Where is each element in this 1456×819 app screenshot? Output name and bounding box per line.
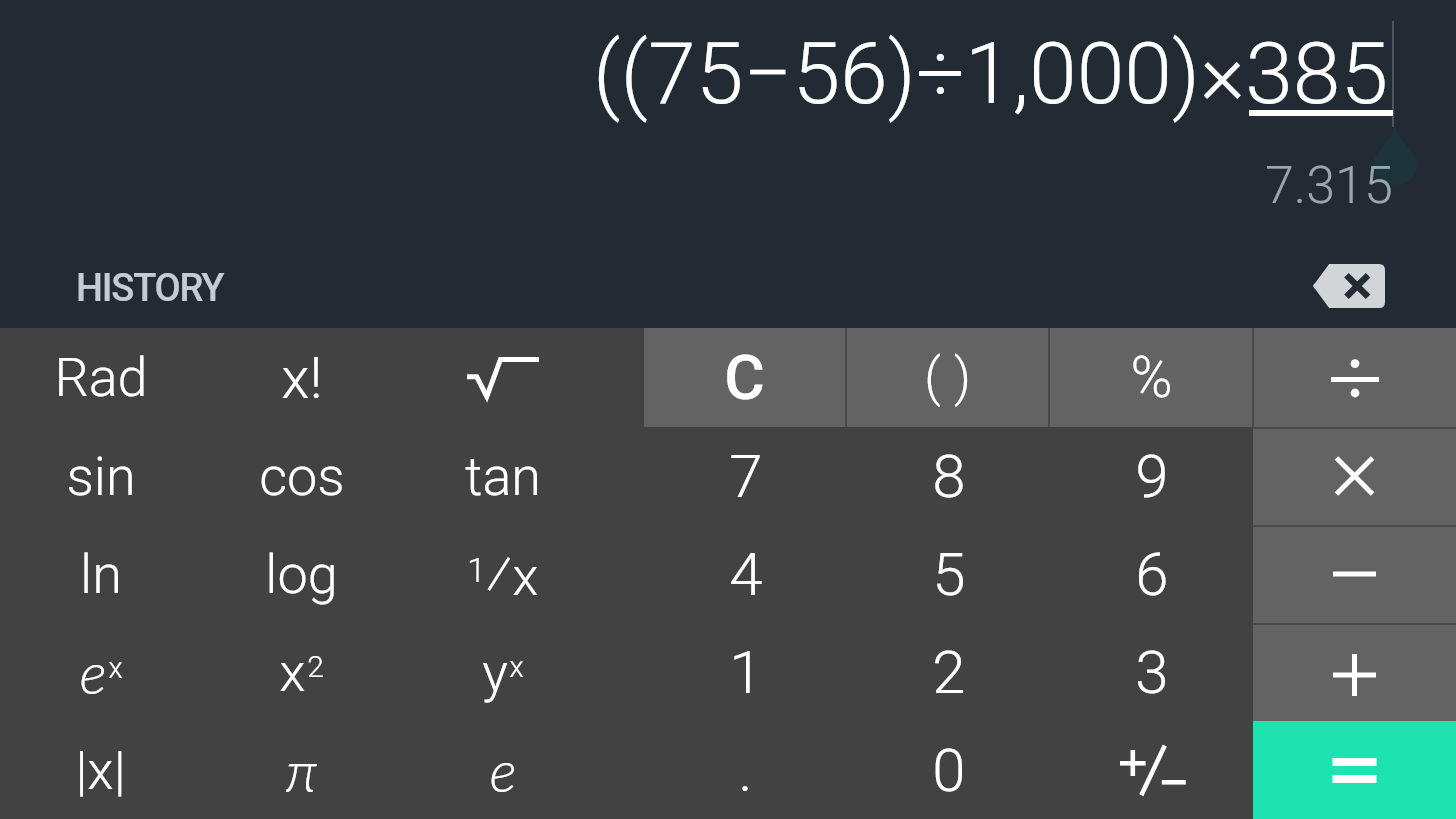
button[interactable]: 8 xyxy=(847,427,1050,525)
staticText: e xyxy=(489,735,517,805)
button[interactable]: 4 xyxy=(644,525,847,623)
button[interactable]: 5 xyxy=(847,525,1050,623)
button[interactable]: Equals xyxy=(1253,721,1456,819)
button[interactable]: Square root xyxy=(402,328,603,427)
button[interactable]: 7 xyxy=(644,427,847,525)
staticText: 4 xyxy=(729,539,763,609)
staticText: e xyxy=(79,637,107,707)
button[interactable]: cos xyxy=(201,427,402,525)
button[interactable]: x xyxy=(201,623,402,721)
other: Square root xyxy=(467,357,539,399)
staticText: 1 xyxy=(467,550,486,590)
button[interactable]: Subtract xyxy=(1253,525,1456,623)
staticText: 1 xyxy=(729,637,763,707)
button[interactable]: |x| xyxy=(0,721,201,819)
staticText: π xyxy=(285,735,318,805)
staticText: y xyxy=(482,641,508,704)
button[interactable]: 9 xyxy=(1050,427,1253,525)
button[interactable]: 0 xyxy=(847,721,1050,819)
button[interactable]: 2 xyxy=(847,623,1050,721)
button[interactable]: ( xyxy=(847,328,1048,427)
staticText: cos xyxy=(259,445,345,508)
button[interactable]: Add xyxy=(1253,623,1456,721)
staticText: . xyxy=(738,735,753,805)
button[interactable]: y xyxy=(402,623,603,721)
button[interactable]: π xyxy=(201,721,402,819)
staticText: ((75−56)÷1,000)×385 xyxy=(593,23,1389,124)
button[interactable]: Backspace xyxy=(1311,264,1385,308)
staticText: x xyxy=(108,650,123,685)
button[interactable]: C xyxy=(644,328,845,427)
staticText: % xyxy=(1130,344,1173,411)
staticText: log xyxy=(265,543,338,606)
button[interactable]: % xyxy=(1050,328,1252,427)
staticText: Rad xyxy=(54,346,148,409)
staticText: x xyxy=(512,545,539,608)
button[interactable]: x! xyxy=(201,328,402,427)
button[interactable]: Multiply xyxy=(1253,427,1456,525)
staticText: 5 xyxy=(932,539,966,609)
button[interactable]: 6 xyxy=(1050,525,1253,623)
staticText: 7 xyxy=(729,441,763,511)
staticText: ⁄ xyxy=(486,540,512,608)
button[interactable]: 3 xyxy=(1050,623,1253,721)
staticText: ln xyxy=(80,543,122,606)
button[interactable]: log xyxy=(201,525,402,623)
button[interactable]: tan xyxy=(402,427,603,525)
staticText: 2 xyxy=(307,649,324,684)
staticText: 9 xyxy=(1135,441,1169,511)
button[interactable]: ln xyxy=(0,525,201,623)
staticText: 3 xyxy=(1135,637,1169,707)
button[interactable]: 1 xyxy=(644,623,847,721)
button[interactable]: e xyxy=(402,721,603,819)
staticText: 8 xyxy=(932,441,966,511)
staticText: HISTORY xyxy=(76,266,224,311)
other: Equals xyxy=(1253,721,1456,819)
staticText: sin xyxy=(66,445,136,508)
staticText: 6 xyxy=(1135,539,1169,609)
button[interactable]: Toggle sign xyxy=(1050,721,1253,819)
button[interactable]: Divide xyxy=(1254,328,1456,427)
staticText: x xyxy=(509,649,524,684)
button[interactable]: e xyxy=(0,623,201,721)
button[interactable]: Rad xyxy=(0,328,201,427)
staticText: C xyxy=(724,341,765,414)
other: Toggle sign xyxy=(1120,744,1187,797)
staticText: x xyxy=(279,641,306,704)
button[interactable]: sin xyxy=(0,427,201,525)
staticText: 2 xyxy=(932,637,966,707)
staticText: 7.315 xyxy=(1265,155,1393,216)
staticText: 0 xyxy=(932,735,966,805)
staticText: x! xyxy=(281,344,323,412)
staticText: ( xyxy=(924,347,941,408)
button[interactable]: HISTORY xyxy=(76,266,224,311)
staticText: |x| xyxy=(75,739,126,802)
staticText: tan xyxy=(465,445,541,508)
button[interactable]: 1 xyxy=(402,525,603,623)
button[interactable]: . xyxy=(644,721,847,819)
staticText: ) xyxy=(954,347,971,408)
